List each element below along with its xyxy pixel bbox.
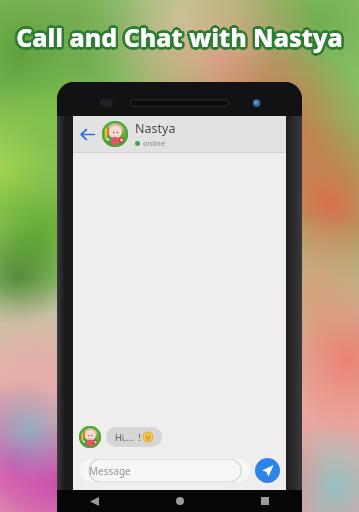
button[interactable]: Message xyxy=(80,459,250,482)
staticText: Message xyxy=(89,464,131,478)
staticText: Hi,... ! xyxy=(115,431,141,443)
button[interactable]: Nastya xyxy=(135,120,286,148)
button[interactable]: Back xyxy=(73,120,101,148)
button[interactable]: Contact photo xyxy=(102,121,128,147)
button[interactable]: Send xyxy=(255,458,280,483)
button[interactable]: Back xyxy=(81,490,107,512)
button[interactable]: Recent apps xyxy=(252,490,278,512)
button[interactable]: Hi,... ! xyxy=(106,427,162,447)
staticText: online xyxy=(143,138,165,148)
staticText: Nastya xyxy=(135,120,176,137)
button[interactable]: Home xyxy=(167,490,193,512)
